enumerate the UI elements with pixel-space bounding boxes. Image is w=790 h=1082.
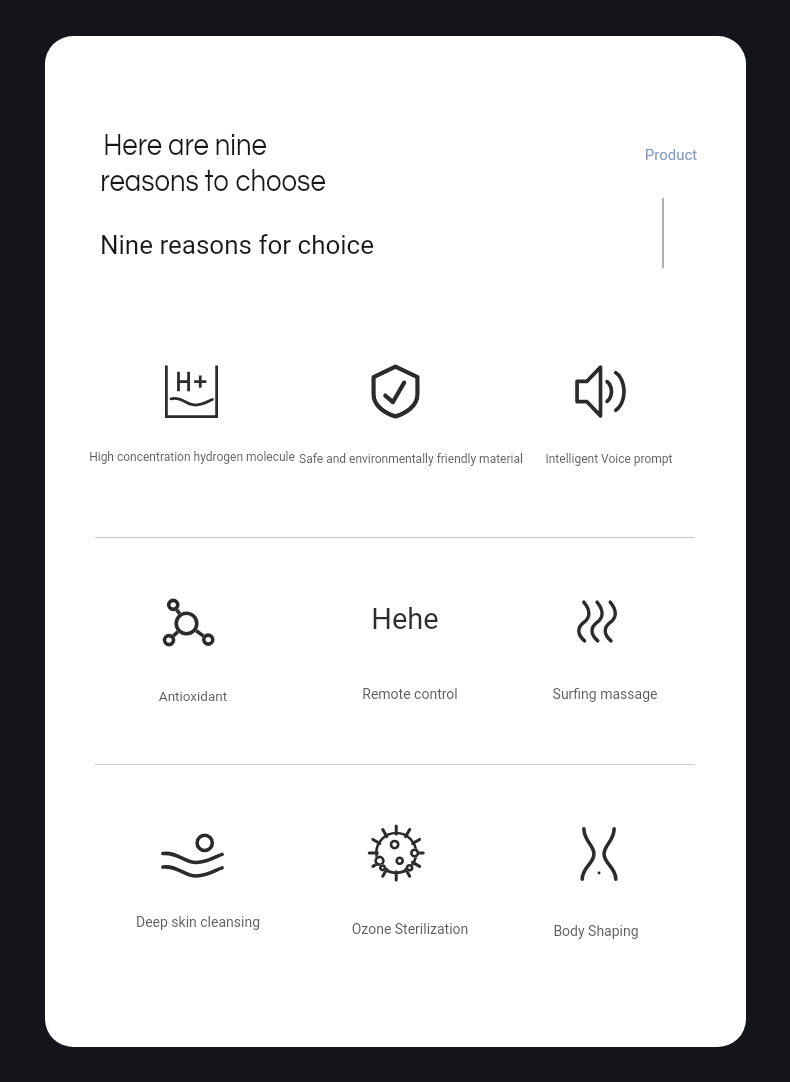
button[interactable]: Product: [611, 146, 731, 164]
staticText: Ozone Sterilization: [285, 921, 535, 937]
staticText: Surfing massage: [505, 686, 705, 702]
staticText: Remote control: [310, 686, 510, 702]
staticText: Antioxidant: [93, 688, 293, 704]
staticText: reasons to choose: [84, 165, 342, 198]
other: Safe and environmentally friendly materi…: [370, 364, 421, 418]
other: High concentration hydrogen molecule: [165, 367, 218, 418]
button[interactable]: Here are nine: [45, 129, 335, 162]
staticText: High concentration hydrogen molecule: [45, 450, 342, 464]
button[interactable]: Body Shaping: [496, 923, 696, 939]
other: Body Shaping: [578, 826, 620, 882]
button[interactable]: Deep skin cleansing: [73, 914, 323, 930]
button[interactable]: Ozone Sterilization: [285, 921, 535, 937]
staticText: Safe and environmentally friendly materi…: [261, 452, 561, 466]
other: Intelligent Voice prompt: [574, 365, 625, 418]
button[interactable]: Intelligent Voice prompt: [509, 452, 709, 466]
button[interactable]: Safe and environmentally friendly materi…: [261, 452, 561, 466]
button[interactable]: Remote control: [310, 686, 510, 702]
staticText: Nine reasons for choice: [62, 230, 412, 260]
button[interactable]: High concentration hydrogen molecule: [45, 450, 342, 464]
button[interactable]: Nine reasons for choice: [62, 230, 412, 260]
staticText: Here are nine: [56, 129, 314, 162]
button[interactable]: Antioxidant: [93, 688, 293, 704]
other: Antioxidant: [164, 597, 214, 648]
staticText: Product: [611, 146, 731, 164]
staticText: Body Shaping: [496, 923, 696, 939]
button[interactable]: reasons to choose: [63, 165, 363, 198]
staticText: Deep skin cleansing: [73, 914, 323, 930]
button[interactable]: Hehe: [305, 602, 505, 636]
other: Deep skin cleansing: [162, 833, 223, 878]
staticText: Hehe: [305, 602, 505, 636]
staticText: Intelligent Voice prompt: [509, 452, 709, 466]
other: Surfing massage: [577, 600, 617, 643]
button[interactable]: Surfing massage: [505, 686, 705, 702]
other: Ozone Sterilization: [368, 825, 425, 882]
